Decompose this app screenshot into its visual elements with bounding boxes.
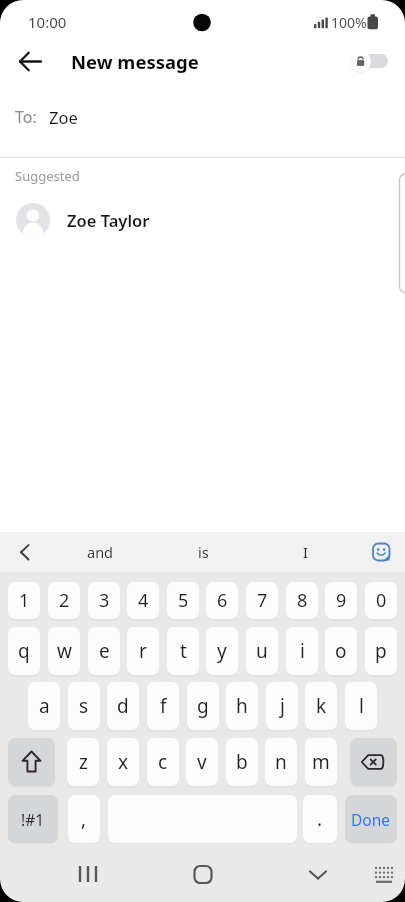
button[interactable]: z (67, 738, 99, 786)
button[interactable]: u (246, 627, 278, 675)
button[interactable] (298, 856, 338, 896)
staticText: t (180, 638, 187, 664)
staticText: i (300, 638, 305, 664)
staticText: y (217, 638, 227, 664)
button[interactable]: a (28, 682, 60, 730)
button[interactable]: x (107, 738, 139, 786)
button[interactable] (366, 537, 396, 567)
staticText: o (335, 638, 347, 664)
staticText: 9 (336, 588, 347, 613)
button[interactable]: 3 (88, 582, 120, 619)
button[interactable]: 7 (246, 582, 278, 619)
button[interactable]: w (48, 627, 80, 675)
button[interactable]: q (8, 627, 40, 675)
staticText: s (79, 693, 89, 719)
staticText: m (312, 749, 330, 775)
button[interactable] (364, 856, 404, 896)
button[interactable]: g (187, 682, 219, 730)
staticText: d (117, 693, 129, 719)
staticText: k (316, 693, 327, 719)
button[interactable]: 8 (286, 582, 318, 619)
staticText: Suggested (15, 167, 80, 185)
button[interactable]: v (186, 738, 218, 786)
staticText: 4 (138, 588, 149, 613)
staticText: n (275, 749, 287, 775)
button[interactable] (68, 856, 108, 896)
staticText: , (81, 806, 87, 832)
button[interactable]: 4 (127, 582, 159, 619)
staticText: . (317, 806, 323, 832)
button[interactable]: 5 (167, 582, 199, 619)
button[interactable]: b (226, 738, 258, 786)
staticText: c (158, 749, 168, 775)
button[interactable] (8, 738, 55, 786)
button[interactable]: Done (345, 795, 397, 843)
button[interactable] (350, 738, 397, 786)
staticText: Done (351, 809, 391, 830)
staticText: and (87, 542, 114, 562)
button[interactable]: j (266, 682, 298, 730)
button[interactable]: f (147, 682, 179, 730)
button[interactable]: e (88, 627, 120, 675)
button[interactable]: r (127, 627, 159, 675)
button[interactable]: 2 (48, 582, 80, 619)
staticText: u (256, 638, 268, 664)
button[interactable]: To: (0, 96, 405, 138)
staticText: f (160, 693, 167, 719)
staticText: To: (15, 106, 37, 128)
staticText: 3 (99, 588, 110, 613)
button[interactable] (344, 44, 396, 78)
staticText: x (118, 749, 129, 775)
staticText: 8 (297, 588, 308, 613)
staticText: !#1 (21, 809, 45, 830)
button[interactable]: is (173, 532, 233, 572)
button[interactable]: and (70, 532, 130, 572)
staticText: b (236, 749, 248, 775)
staticText: z (79, 749, 88, 775)
button[interactable]: d (107, 682, 139, 730)
staticText: v (197, 749, 207, 775)
button[interactable]: h (226, 682, 258, 730)
button[interactable] (8, 537, 38, 567)
staticText: 6 (217, 588, 228, 613)
button[interactable]: m (305, 738, 337, 786)
staticText: p (375, 638, 387, 664)
staticText: New message (71, 49, 199, 74)
staticText: h (236, 693, 248, 719)
staticText: 7 (257, 588, 268, 613)
staticText: I (303, 542, 308, 562)
button[interactable]: s (68, 682, 100, 730)
button[interactable]: I (275, 532, 335, 572)
button[interactable]: . (303, 795, 337, 843)
staticText: w (57, 638, 72, 664)
staticText: 0 (376, 588, 387, 613)
button[interactable]: y (206, 627, 238, 675)
button[interactable]: Zoe Taylor (0, 197, 405, 243)
staticText: Zoe (49, 106, 78, 128)
staticText: is (198, 542, 209, 562)
staticText: a (39, 693, 50, 719)
button[interactable]: 1 (8, 582, 40, 619)
button[interactable]: o (325, 627, 357, 675)
button[interactable]: p (365, 627, 397, 675)
button[interactable]: !#1 (8, 795, 58, 843)
button[interactable]: i (286, 627, 318, 675)
button[interactable]: n (265, 738, 297, 786)
staticText: 10:00 (28, 12, 67, 32)
staticText: q (18, 638, 30, 664)
button[interactable]: c (147, 738, 179, 786)
button[interactable]: 9 (325, 582, 357, 619)
button[interactable]: t (167, 627, 199, 675)
button[interactable]: 6 (206, 582, 238, 619)
button[interactable] (10, 42, 50, 82)
button[interactable]: l (345, 682, 377, 730)
staticText: r (139, 638, 147, 664)
staticText: 1 (19, 588, 30, 613)
button[interactable]: 0 (365, 582, 397, 619)
button[interactable] (183, 856, 223, 896)
button[interactable]: k (305, 682, 337, 730)
staticText: Zoe Taylor (67, 209, 150, 231)
staticText: l (359, 693, 364, 719)
button[interactable]: , (68, 795, 100, 843)
